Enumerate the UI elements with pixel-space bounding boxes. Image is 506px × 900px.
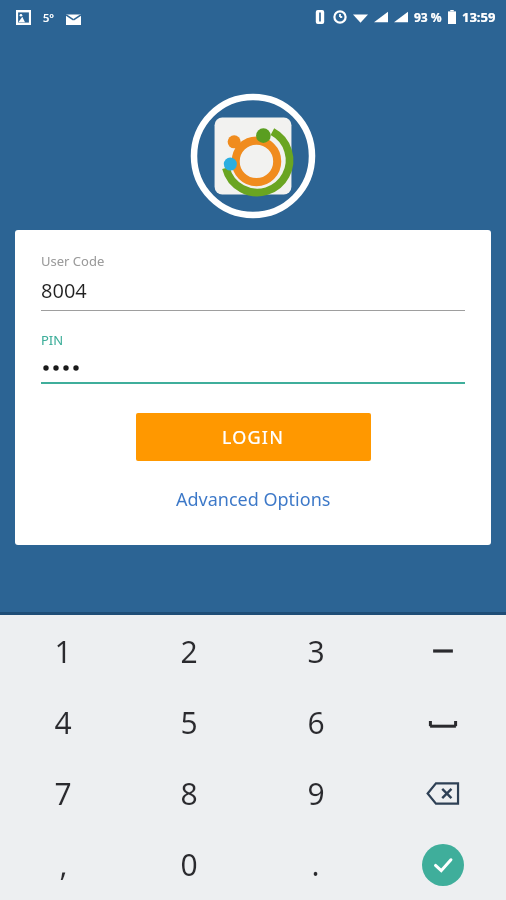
button[interactable]: 5 xyxy=(126,687,252,758)
button[interactable]: Advanced Options xyxy=(166,483,341,516)
staticText: LOGIN xyxy=(222,425,285,450)
staticText: PIN xyxy=(41,331,64,349)
button[interactable]: 2 xyxy=(126,615,252,687)
button[interactable]: 1 xyxy=(0,615,126,687)
staticText: 7 xyxy=(54,773,72,814)
staticText: 3 xyxy=(307,631,325,672)
button[interactable]: Minus xyxy=(379,615,506,687)
button[interactable]: Backspace xyxy=(379,758,506,829)
staticText: 8004 xyxy=(41,277,87,304)
staticText: User Code xyxy=(41,252,105,270)
staticText: 9 xyxy=(307,773,325,814)
staticText: . xyxy=(311,844,320,885)
staticText: 13:59 xyxy=(462,8,496,26)
button[interactable]: 6 xyxy=(252,687,379,758)
staticText: 1 xyxy=(54,631,72,672)
button[interactable]: 7 xyxy=(0,758,126,829)
staticText: Advanced Options xyxy=(176,487,331,512)
button[interactable]: , xyxy=(0,829,126,900)
staticText: 6 xyxy=(307,702,325,743)
staticText: 4 xyxy=(54,702,72,743)
button[interactable]: 9 xyxy=(252,758,379,829)
staticText: 2 xyxy=(180,631,198,672)
staticText: 0 xyxy=(180,844,198,885)
button[interactable]: 4 xyxy=(0,687,126,758)
button[interactable]: LOGIN xyxy=(136,413,371,461)
button[interactable]: . xyxy=(252,829,379,900)
button[interactable]: 3 xyxy=(252,615,379,687)
staticText: 5 xyxy=(180,702,198,743)
button[interactable]: Space xyxy=(379,687,506,758)
staticText: 5° xyxy=(43,10,54,25)
staticText: , xyxy=(59,844,68,885)
button[interactable]: Enter xyxy=(379,829,506,900)
button[interactable]: 0 xyxy=(126,829,252,900)
staticText: 93 % xyxy=(414,9,442,25)
button[interactable]: 8 xyxy=(126,758,252,829)
staticText: 8 xyxy=(180,773,198,814)
